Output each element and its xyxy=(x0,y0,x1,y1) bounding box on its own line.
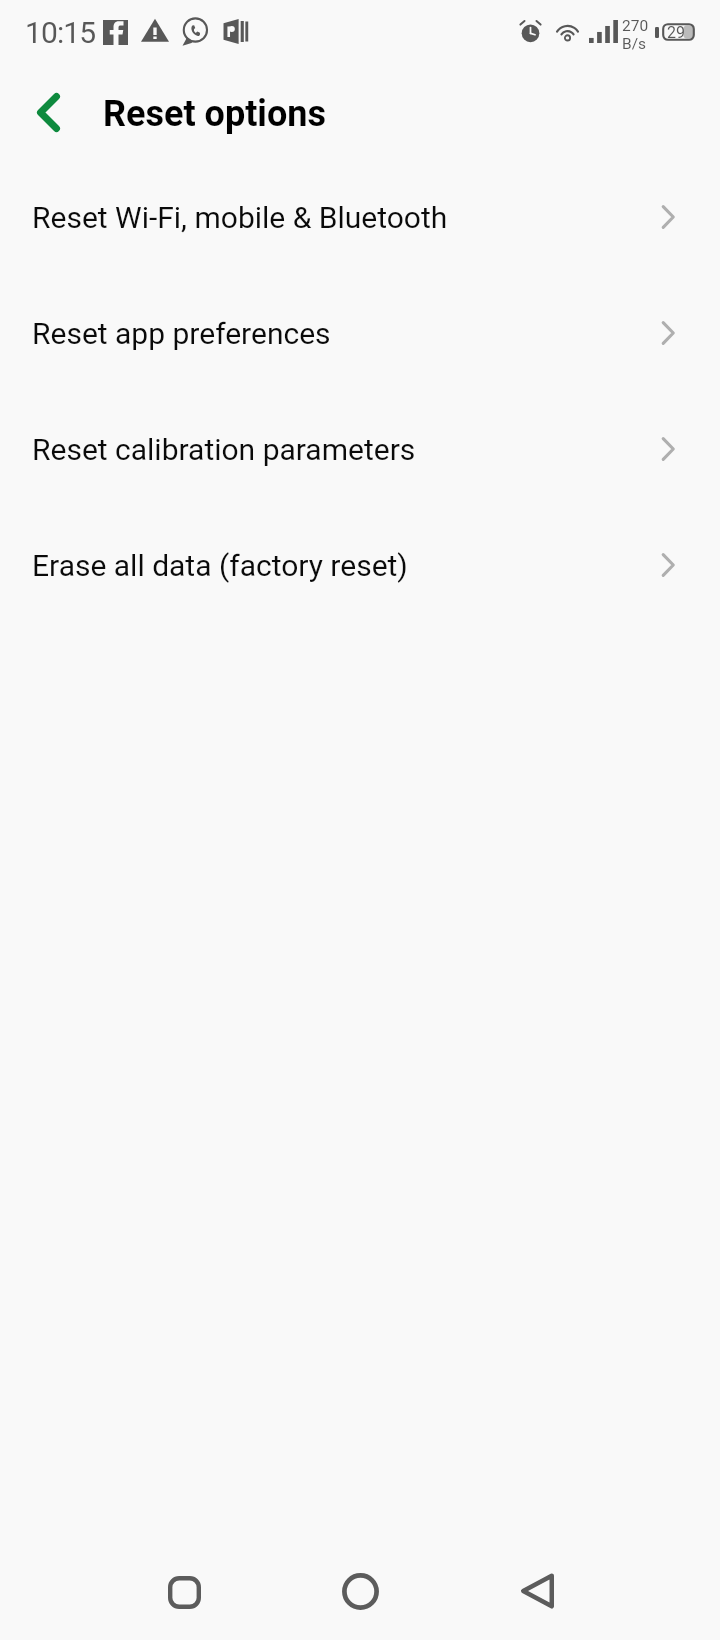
staticText: 270 xyxy=(622,17,649,35)
staticText: Reset Wi-Fi, mobile & Bluetooth xyxy=(32,200,448,235)
staticText: Reset app preferences xyxy=(32,316,331,351)
button[interactable]: Recent apps xyxy=(124,1552,244,1632)
button[interactable]: Erase all data (factory reset) xyxy=(0,507,720,623)
button[interactable]: Reset calibration parameters xyxy=(0,391,720,507)
staticText: B/s xyxy=(622,35,647,53)
button[interactable]: Home xyxy=(300,1551,420,1631)
button[interactable]: Reset app preferences xyxy=(0,275,720,391)
staticText: 29 xyxy=(667,23,685,41)
staticText: Reset options xyxy=(103,93,326,135)
button[interactable]: Back xyxy=(18,81,78,143)
staticText: 10:15 xyxy=(25,15,96,50)
staticText: Erase all data (factory reset) xyxy=(32,548,408,583)
button[interactable]: Back xyxy=(477,1551,597,1631)
staticText: Reset calibration parameters xyxy=(32,432,416,467)
button[interactable]: Reset Wi-Fi, mobile & Bluetooth xyxy=(0,159,720,275)
